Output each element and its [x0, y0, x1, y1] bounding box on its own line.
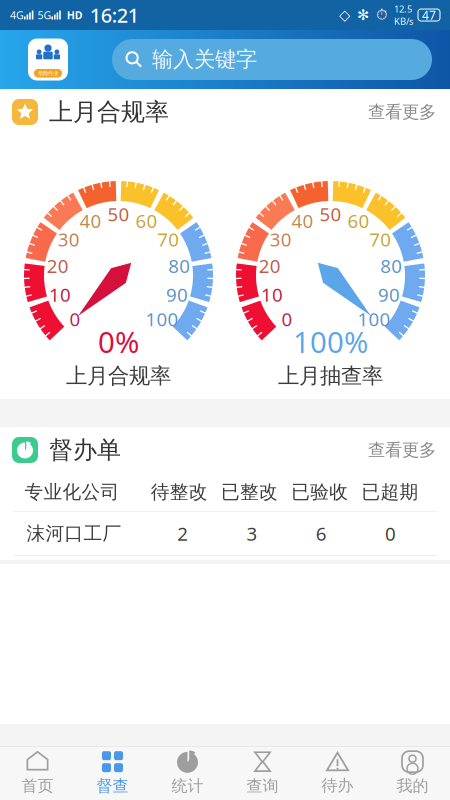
staticText: 0: [69, 307, 80, 331]
staticText: 10: [49, 282, 71, 307]
button[interactable]: 沫河口工厂: [0, 512, 450, 555]
staticText: HD: [67, 8, 83, 22]
staticText: 30: [58, 227, 80, 252]
staticText: 0: [281, 307, 292, 331]
staticText: 0%: [98, 322, 139, 361]
button[interactable]: 首页: [0, 747, 75, 800]
staticText: 12.5 KB/s: [394, 3, 413, 27]
staticText: 60: [347, 208, 369, 233]
staticText: 沫河口工厂: [26, 522, 121, 545]
button[interactable]: 查询: [225, 747, 300, 800]
button[interactable]: 统计: [150, 747, 225, 800]
staticText: 上月合规率: [66, 363, 171, 389]
staticText: 70: [369, 227, 391, 252]
staticText: 90: [378, 282, 400, 307]
staticText: 80: [168, 253, 190, 278]
button[interactable]: 待办: [300, 747, 375, 800]
staticText: 督办单: [49, 435, 121, 465]
button[interactable]: 查看更多: [368, 93, 436, 131]
staticText: 输入关键字: [152, 46, 257, 73]
staticText: 3: [246, 521, 257, 546]
staticText: ◇: [339, 7, 350, 23]
staticText: 50: [319, 202, 341, 226]
staticText: 16:21: [90, 2, 139, 28]
staticText: 30: [270, 227, 292, 252]
staticText: 20: [259, 253, 281, 278]
staticText: 首页: [21, 776, 53, 796]
staticText: 90: [166, 282, 188, 307]
staticText: 已整改: [221, 480, 278, 503]
staticText: 100: [357, 307, 390, 331]
staticText: 已超期: [361, 480, 418, 503]
staticText: 2: [177, 521, 188, 546]
staticText: 上月合规率: [49, 97, 169, 127]
staticText: 已验收: [291, 480, 348, 503]
staticText: ✻: [357, 7, 369, 23]
staticText: 专业化公司: [24, 480, 119, 503]
staticText: 危险作业: [38, 70, 58, 76]
staticText: 50: [107, 202, 129, 226]
button[interactable]: 我的: [375, 747, 450, 800]
staticText: 4G: [10, 8, 24, 22]
staticText: 查看更多: [368, 439, 436, 461]
staticText: 100%: [293, 322, 368, 361]
staticText: 待办: [321, 776, 353, 795]
staticText: 10: [261, 282, 283, 307]
staticText: ⏱: [376, 8, 387, 22]
staticText: 督查: [96, 776, 128, 796]
staticText: 100: [145, 307, 178, 331]
staticText: 统计: [171, 776, 203, 796]
staticText: 6: [316, 521, 327, 546]
staticText: 查看更多: [368, 101, 436, 123]
button[interactable]: 督查: [75, 747, 150, 800]
button[interactable]: 查看更多: [368, 431, 436, 469]
staticText: 40: [292, 208, 314, 233]
staticText: 5G: [37, 8, 51, 22]
staticText: 60: [135, 208, 157, 233]
staticText: 待整改: [151, 480, 208, 503]
staticText: 47: [422, 7, 436, 23]
staticText: 我的: [396, 776, 428, 796]
button[interactable]: 输入关键字: [112, 39, 432, 80]
staticText: 20: [47, 253, 69, 278]
staticText: 80: [380, 253, 402, 278]
button[interactable]: 危险作业 应用: [28, 38, 68, 80]
staticText: 70: [157, 227, 179, 252]
staticText: 0: [385, 521, 396, 546]
staticText: 查询: [246, 776, 278, 796]
staticText: 40: [80, 208, 102, 233]
staticText: 上月抽查率: [278, 363, 383, 389]
